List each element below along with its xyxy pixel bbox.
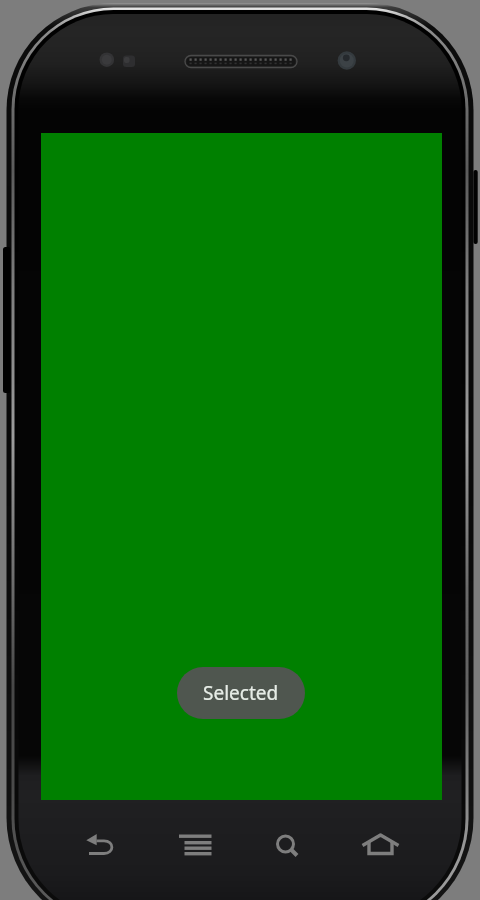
staticText: Selected <box>203 680 279 706</box>
button[interactable]: Search <box>243 812 328 878</box>
button[interactable]: Back <box>58 812 143 878</box>
button[interactable]: Selected <box>177 667 305 719</box>
button[interactable]: Home <box>338 812 423 878</box>
button[interactable]: Menu <box>153 812 238 878</box>
